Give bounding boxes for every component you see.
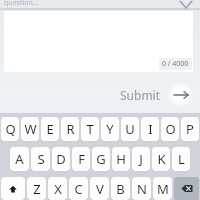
button[interactable]: G [92,147,110,171]
staticText: J [139,150,143,168]
staticText: Submit [120,87,161,103]
button[interactable]: J [132,147,150,171]
button[interactable]: C [69,177,88,200]
staticText: G [96,150,106,168]
staticText: B [116,180,125,198]
staticText: A [15,150,24,168]
button[interactable]: Submit [112,81,194,108]
button[interactable]: B [111,177,130,200]
button[interactable]: O [161,117,179,141]
button[interactable]: H [112,147,130,171]
button[interactable]: 0 / 4000 [4,11,193,72]
staticText: D [56,150,66,168]
staticText: Y [106,120,114,138]
button[interactable]: W [21,117,39,141]
button[interactable]: P [181,117,199,141]
staticText: M [157,180,169,198]
staticText: question... [4,0,39,8]
button[interactable]: A [10,147,29,171]
staticText: Q [5,120,16,138]
staticText: L [178,150,185,168]
staticText: F [78,150,85,168]
staticText: P [186,120,194,138]
button[interactable]: U [121,117,139,141]
button[interactable]: Collapse [178,0,194,11]
button[interactable]: T [81,117,99,141]
staticText: 0 / 4000 [162,59,189,69]
staticText: R [66,120,75,138]
button[interactable]: K [152,147,170,171]
button[interactable]: M [153,177,172,200]
button[interactable]: X [48,177,67,200]
staticText: I [148,120,153,138]
button[interactable]: R [61,117,79,141]
button[interactable]: I [141,117,159,141]
button[interactable]: E [41,117,59,141]
staticText: S [37,150,45,168]
staticText: Z [33,180,41,198]
button[interactable]: Y [101,117,119,141]
staticText: U [125,120,135,138]
staticText: H [116,150,126,168]
button[interactable]: N [132,177,151,200]
button[interactable]: V [90,177,109,200]
staticText: T [86,120,94,138]
button[interactable]: S [31,147,50,171]
button[interactable]: Z [27,177,46,200]
button[interactable]: L [172,147,190,171]
button[interactable]: D [52,147,70,171]
button[interactable]: F [72,147,90,171]
staticText: N [137,180,147,198]
staticText: X [54,180,62,198]
staticText: V [96,180,104,198]
staticText: W [24,120,37,138]
staticText: K [157,150,166,168]
staticText: C [74,180,83,198]
other: Submit [167,81,194,108]
button[interactable]: Backspace [174,177,199,200]
staticText: E [46,120,54,138]
button[interactable]: Q [1,117,19,141]
staticText: O [165,120,176,138]
button[interactable]: Shift [1,177,25,200]
